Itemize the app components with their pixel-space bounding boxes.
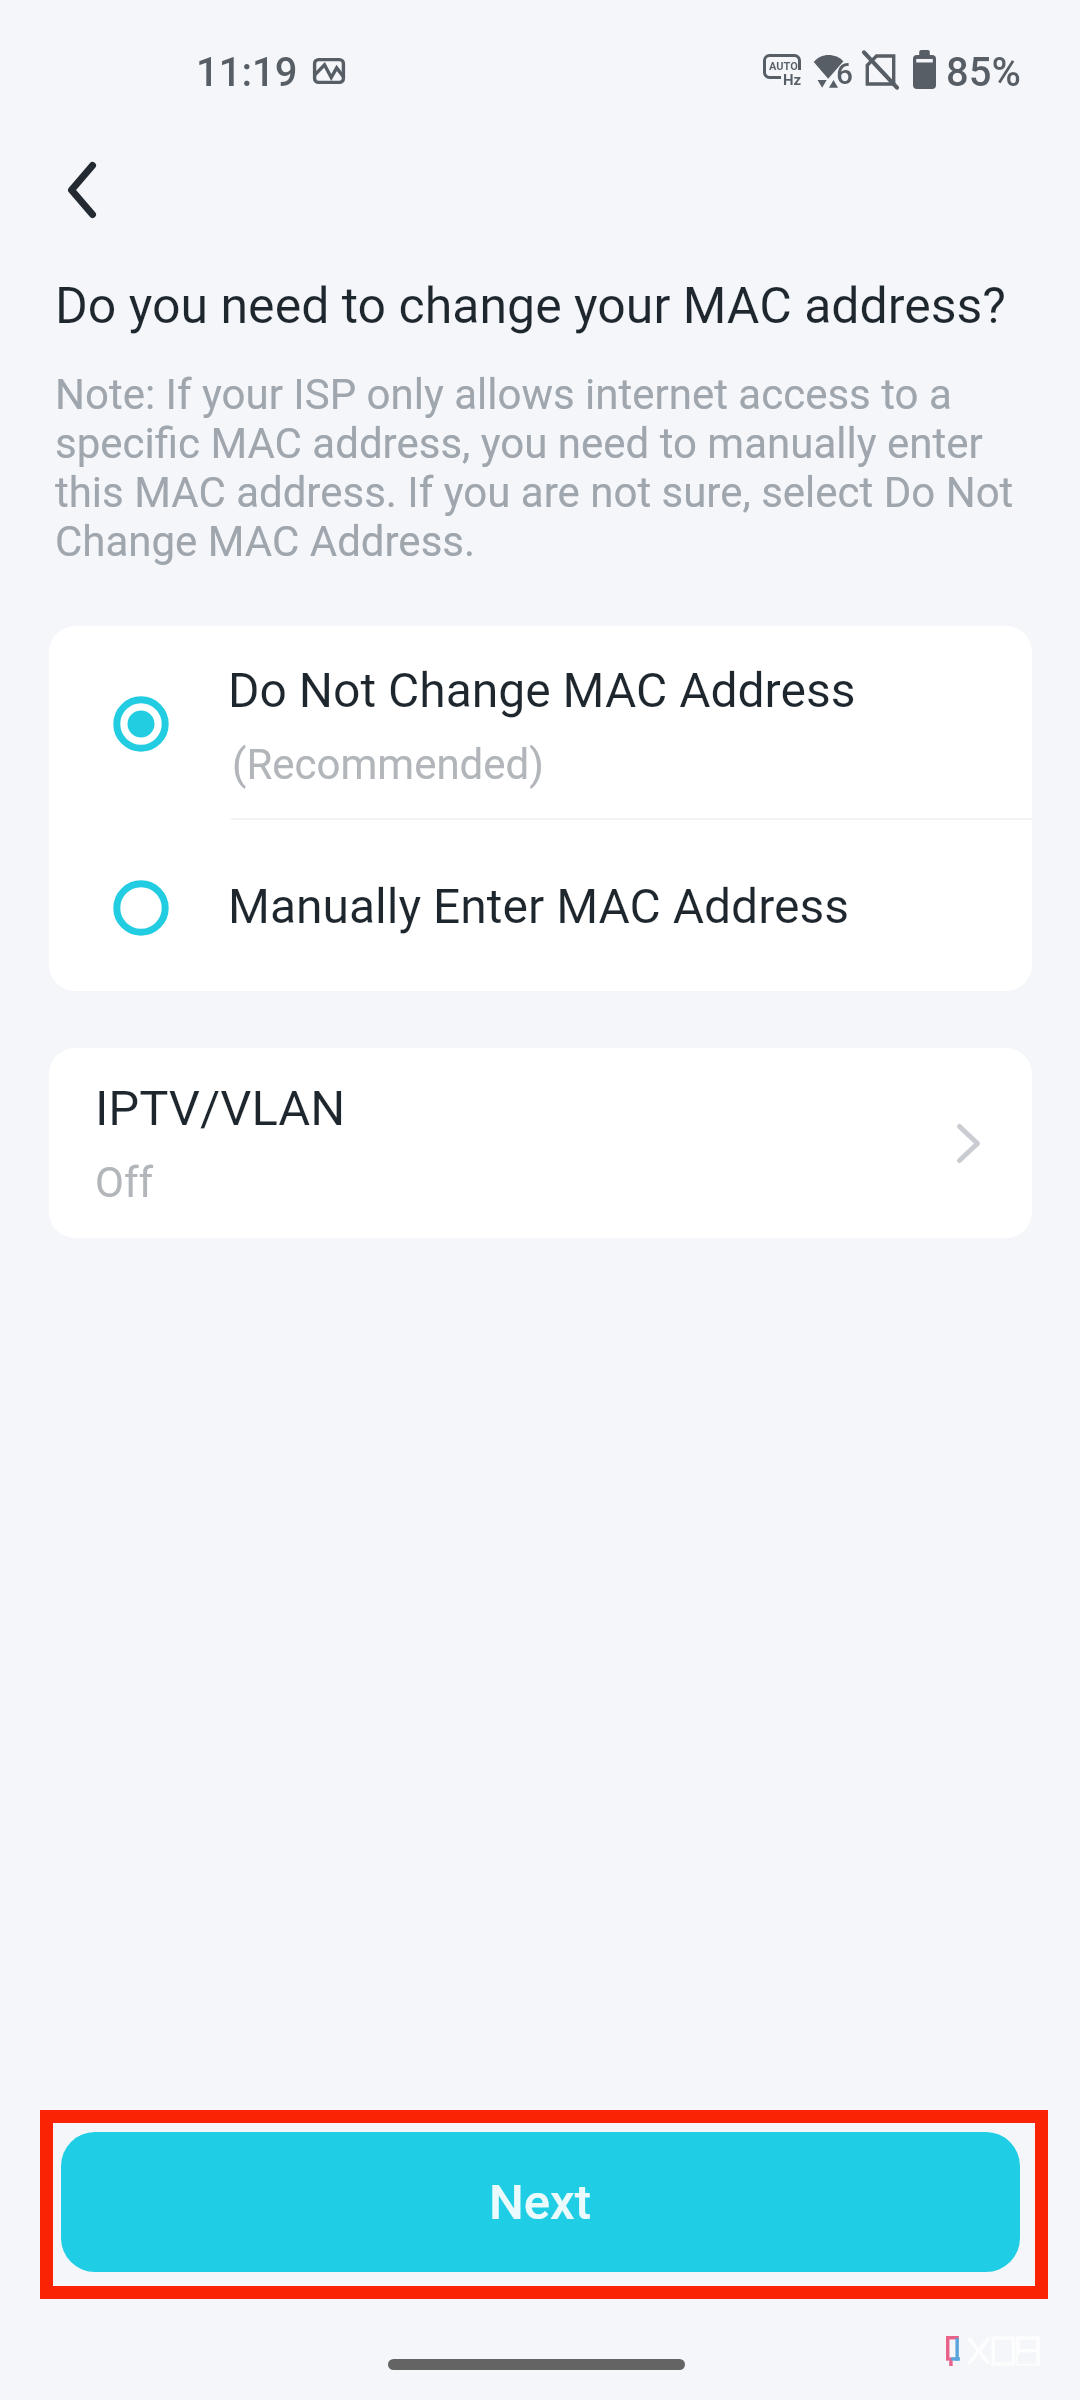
staticText: Do Not Change MAC Address — [228, 662, 856, 718]
staticText: Hz — [783, 71, 802, 89]
button[interactable]: IPTV/VLAN — [49, 1048, 1032, 1238]
staticText: (Recommended) — [232, 740, 544, 789]
button[interactable]: Do Not Change MAC Address — [49, 626, 1032, 818]
staticText: IPTV/VLAN — [95, 1080, 346, 1137]
staticText: Off — [95, 1158, 154, 1207]
other: Screenshot — [313, 58, 345, 84]
staticText: Do you need to change your MAC address? — [55, 277, 1021, 336]
staticText: Next — [489, 2174, 592, 2231]
staticText: AUTO — [769, 60, 798, 73]
staticText: 85% — [946, 49, 1021, 96]
staticText: 11:19 — [196, 49, 298, 96]
button[interactable]: Next — [61, 2132, 1020, 2272]
button[interactable]: Back — [26, 134, 138, 246]
staticText: Manually Enter MAC Address — [228, 878, 849, 934]
staticText: 6 — [836, 56, 854, 91]
staticText: Note: If your ISP only allows internet a… — [55, 370, 1021, 566]
button[interactable]: Manually Enter MAC Address — [49, 820, 1032, 991]
